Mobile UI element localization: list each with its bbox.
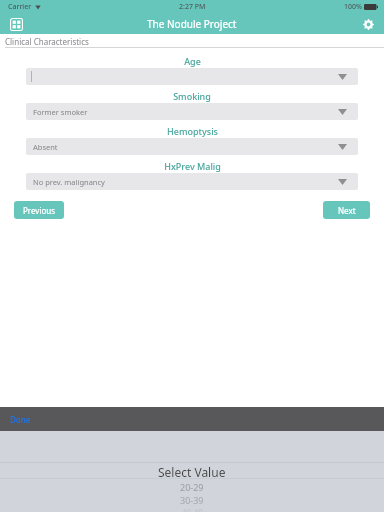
staticText: HxPrev Malig (164, 160, 221, 172)
staticText: 40-49 (182, 507, 203, 512)
staticText: 100% (344, 2, 362, 12)
button[interactable]: Former smoker (26, 103, 358, 120)
staticText: 2:27 PM (179, 2, 206, 12)
button[interactable]: Previous (14, 201, 64, 219)
staticText: No prev. malignancy (33, 177, 105, 187)
staticText: 30-39 (180, 494, 204, 506)
button[interactable]: Settings (357, 14, 379, 34)
staticText: Carrier (8, 2, 32, 12)
staticText: Clinical Characteristics (5, 36, 89, 47)
staticText: Hemoptysis (167, 125, 218, 137)
staticText: Former smoker (33, 107, 88, 117)
button[interactable]: Done (6, 412, 35, 427)
staticText: Absent (33, 142, 58, 152)
button[interactable] (26, 68, 358, 85)
staticText: Next (338, 205, 356, 216)
button[interactable]: Absent (26, 138, 358, 155)
staticText: Previous (23, 205, 56, 216)
staticText: Select Value (158, 464, 226, 480)
staticText: 20-29 (180, 481, 204, 493)
staticText: Age (184, 55, 201, 67)
button[interactable]: Table view (4, 14, 28, 34)
staticText: Done (10, 414, 31, 425)
button[interactable]: No prev. malignancy (26, 173, 358, 190)
staticText: Smoking (173, 90, 211, 102)
button[interactable]: Next (323, 201, 370, 219)
staticText: The Nodule Project (147, 17, 237, 31)
